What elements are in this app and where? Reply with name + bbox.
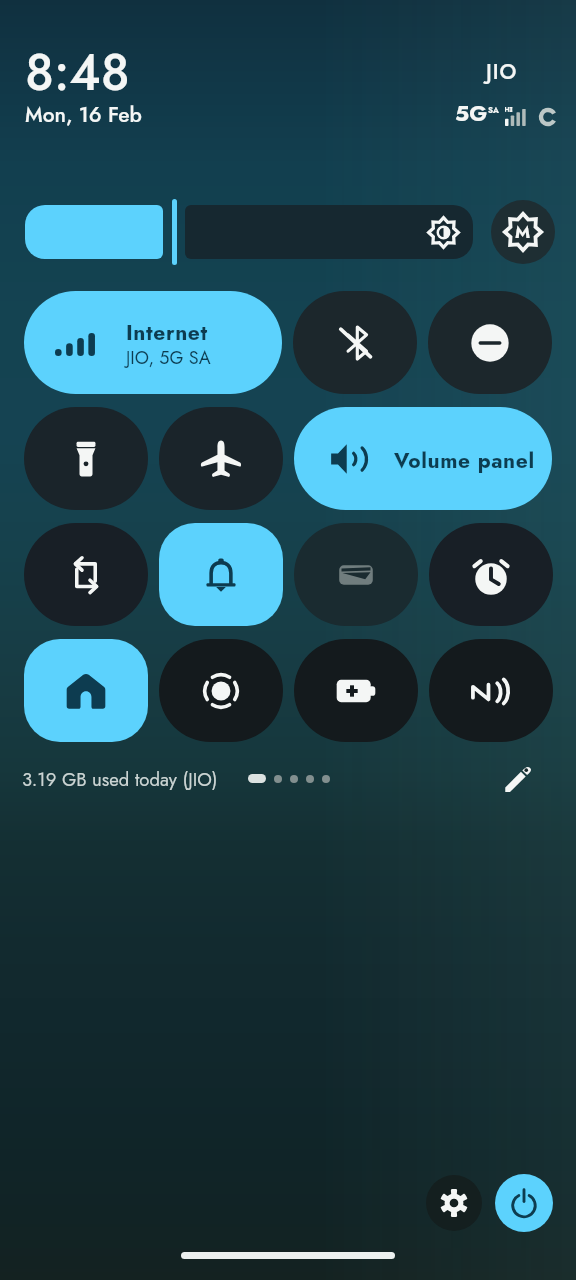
- button[interactable]: Auto brightness: [491, 200, 555, 264]
- button[interactable]: Wallet: [294, 523, 418, 626]
- staticText: Mon, 16 Feb: [25, 100, 142, 130]
- staticText: JIO, 5G SA: [126, 345, 211, 371]
- button[interactable]: Airplane mode: [159, 407, 283, 510]
- button[interactable]: NFC: [429, 639, 553, 742]
- button[interactable]: Screen record: [159, 639, 283, 742]
- button[interactable]: Do not disturb: [428, 291, 552, 394]
- button[interactable]: Brightness level: [25, 205, 163, 259]
- button[interactable]: Auto rotate: [24, 523, 148, 626]
- staticText: M: [515, 220, 531, 245]
- staticText: 5G: [455, 97, 488, 129]
- button[interactable]: Home: [24, 639, 148, 742]
- staticText: 3.19 GB used today (JIO): [22, 766, 218, 793]
- button[interactable]: Bluetooth off: [293, 291, 417, 394]
- button[interactable]: Alarm: [429, 523, 553, 626]
- button[interactable]: Volume panel: [294, 407, 552, 510]
- button[interactable]: Battery saver: [294, 639, 418, 742]
- button[interactable]: Alarm ring: [159, 523, 283, 626]
- staticText: JIO: [486, 57, 518, 87]
- staticText: SA: [488, 104, 499, 116]
- staticText: Internet: [126, 318, 208, 348]
- staticText: 8:48: [25, 36, 130, 108]
- button[interactable]: Edit tiles: [499, 760, 537, 798]
- staticText: Volume panel: [394, 446, 535, 476]
- button[interactable]: Power: [495, 1174, 553, 1232]
- button[interactable]: Brightness slider: [185, 205, 473, 259]
- button[interactable]: Flashlight: [24, 407, 148, 510]
- button[interactable]: Settings: [426, 1175, 482, 1231]
- button[interactable]: Internet: [24, 291, 282, 394]
